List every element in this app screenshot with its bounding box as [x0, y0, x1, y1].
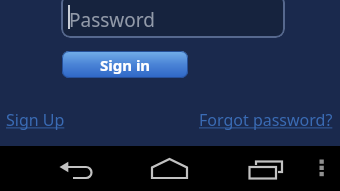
- button[interactable]: [147, 153, 192, 187]
- button[interactable]: Sign in: [62, 51, 188, 78]
- button[interactable]: Forgot password?: [199, 109, 333, 131]
- button[interactable]: Password: [61, 0, 285, 38]
- staticText: Sign Up: [6, 109, 65, 131]
- staticText: Sign in: [100, 55, 151, 75]
- button[interactable]: [308, 153, 336, 187]
- button[interactable]: Sign Up: [6, 109, 65, 131]
- button[interactable]: [243, 153, 288, 187]
- button[interactable]: [52, 153, 96, 187]
- staticText: Password: [69, 7, 155, 33]
- staticText: Forgot password?: [199, 109, 333, 131]
